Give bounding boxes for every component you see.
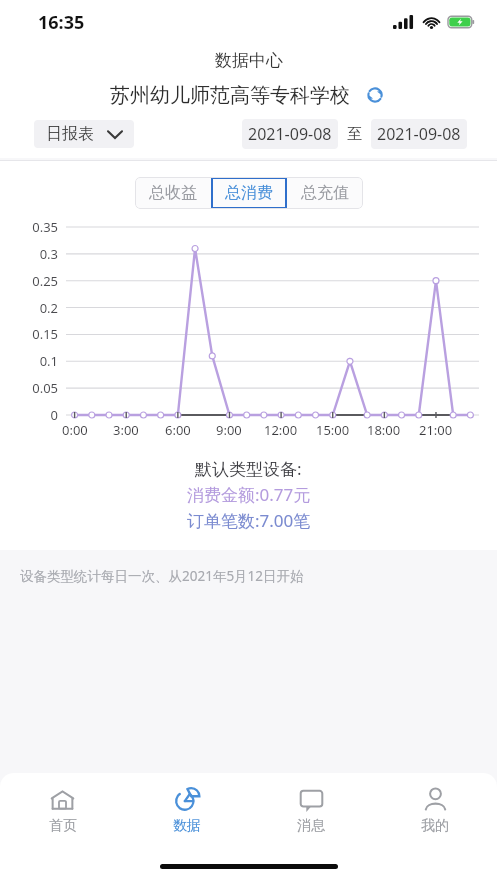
button[interactable]: 我的 <box>373 780 497 841</box>
staticText: 消息 <box>297 817 325 835</box>
staticText: 2021-09-08 <box>248 123 332 145</box>
staticText: 默认类型设备: <box>195 457 302 480</box>
staticText: 0.15 <box>32 325 58 343</box>
staticText: 0 <box>50 406 58 424</box>
staticText: 设备类型统计每日一次、从2021年5月12日开始 <box>20 567 304 585</box>
staticText: 0.35 <box>32 218 58 236</box>
button[interactable]: 首页 <box>0 780 125 841</box>
staticText: 15:00 <box>316 421 350 439</box>
staticText: 总消费 <box>225 183 273 203</box>
staticText: 18:00 <box>367 421 401 439</box>
button[interactable]: 刷新 <box>362 82 388 108</box>
staticText: 12:00 <box>264 421 298 439</box>
staticText: 3:00 <box>113 421 139 439</box>
staticText: 21:00 <box>419 421 453 439</box>
staticText: 我的 <box>421 817 449 835</box>
staticText: 9:00 <box>216 421 242 439</box>
staticText: 总收益 <box>149 183 197 203</box>
staticText: 0.05 <box>32 379 58 397</box>
button[interactable]: 2021-09-08 <box>242 119 338 149</box>
staticText: 16:35 <box>38 10 85 35</box>
button[interactable]: 日报表 <box>34 120 134 148</box>
staticText: 0:00 <box>62 421 88 439</box>
staticText: 首页 <box>49 817 77 835</box>
staticText: 数据中心 <box>215 50 283 71</box>
staticText: 0.25 <box>32 272 58 290</box>
button[interactable]: 消息 <box>249 780 373 841</box>
button[interactable]: 总充值 <box>287 177 363 209</box>
staticText: 日报表 <box>46 124 94 144</box>
staticText: 苏州幼儿师范高等专科学校 <box>110 83 350 108</box>
staticText: 总充值 <box>301 183 349 203</box>
staticText: 消费金额:0.77元 <box>187 483 311 506</box>
button[interactable]: 总收益 <box>135 177 211 209</box>
staticText: 订单笔数:7.00笔 <box>187 509 311 532</box>
button[interactable]: 总消费 <box>211 177 287 209</box>
button[interactable]: 2021-09-08 <box>371 119 467 149</box>
staticText: 0.2 <box>39 299 58 317</box>
staticText: 数据 <box>173 817 201 835</box>
staticText: 2021-09-08 <box>377 123 461 145</box>
staticText: 6:00 <box>165 421 191 439</box>
staticText: 至 <box>347 125 362 144</box>
staticText: 0.3 <box>39 245 58 263</box>
staticText: 0.1 <box>39 352 58 370</box>
button[interactable]: 数据 <box>125 780 249 841</box>
